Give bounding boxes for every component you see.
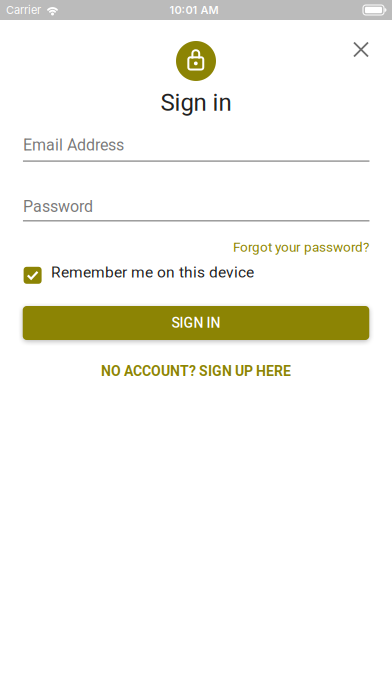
staticText: Forgot your password? — [233, 239, 369, 255]
staticText: Carrier — [6, 3, 41, 17]
staticText: Password — [23, 197, 93, 216]
staticText: Sign in — [160, 88, 231, 116]
button[interactable]: SIGN IN — [23, 306, 369, 340]
button[interactable]: Forgot your password? — [233, 239, 369, 255]
staticText: NO ACCOUNT? SIGN UP HERE — [101, 363, 291, 379]
staticText: Email Address — [23, 136, 124, 154]
button[interactable]: NO ACCOUNT? SIGN UP HERE — [101, 363, 291, 379]
textField[interactable]: Email Address — [23, 135, 369, 163]
staticText: Remember me on this device — [51, 263, 254, 281]
button[interactable]: Close — [343, 31, 379, 67]
staticText: 10:01 AM — [169, 3, 218, 17]
staticText: SIGN IN — [171, 315, 220, 331]
secureTextField[interactable]: Password — [23, 195, 369, 223]
button[interactable]: Remember me on this device — [24, 267, 42, 284]
